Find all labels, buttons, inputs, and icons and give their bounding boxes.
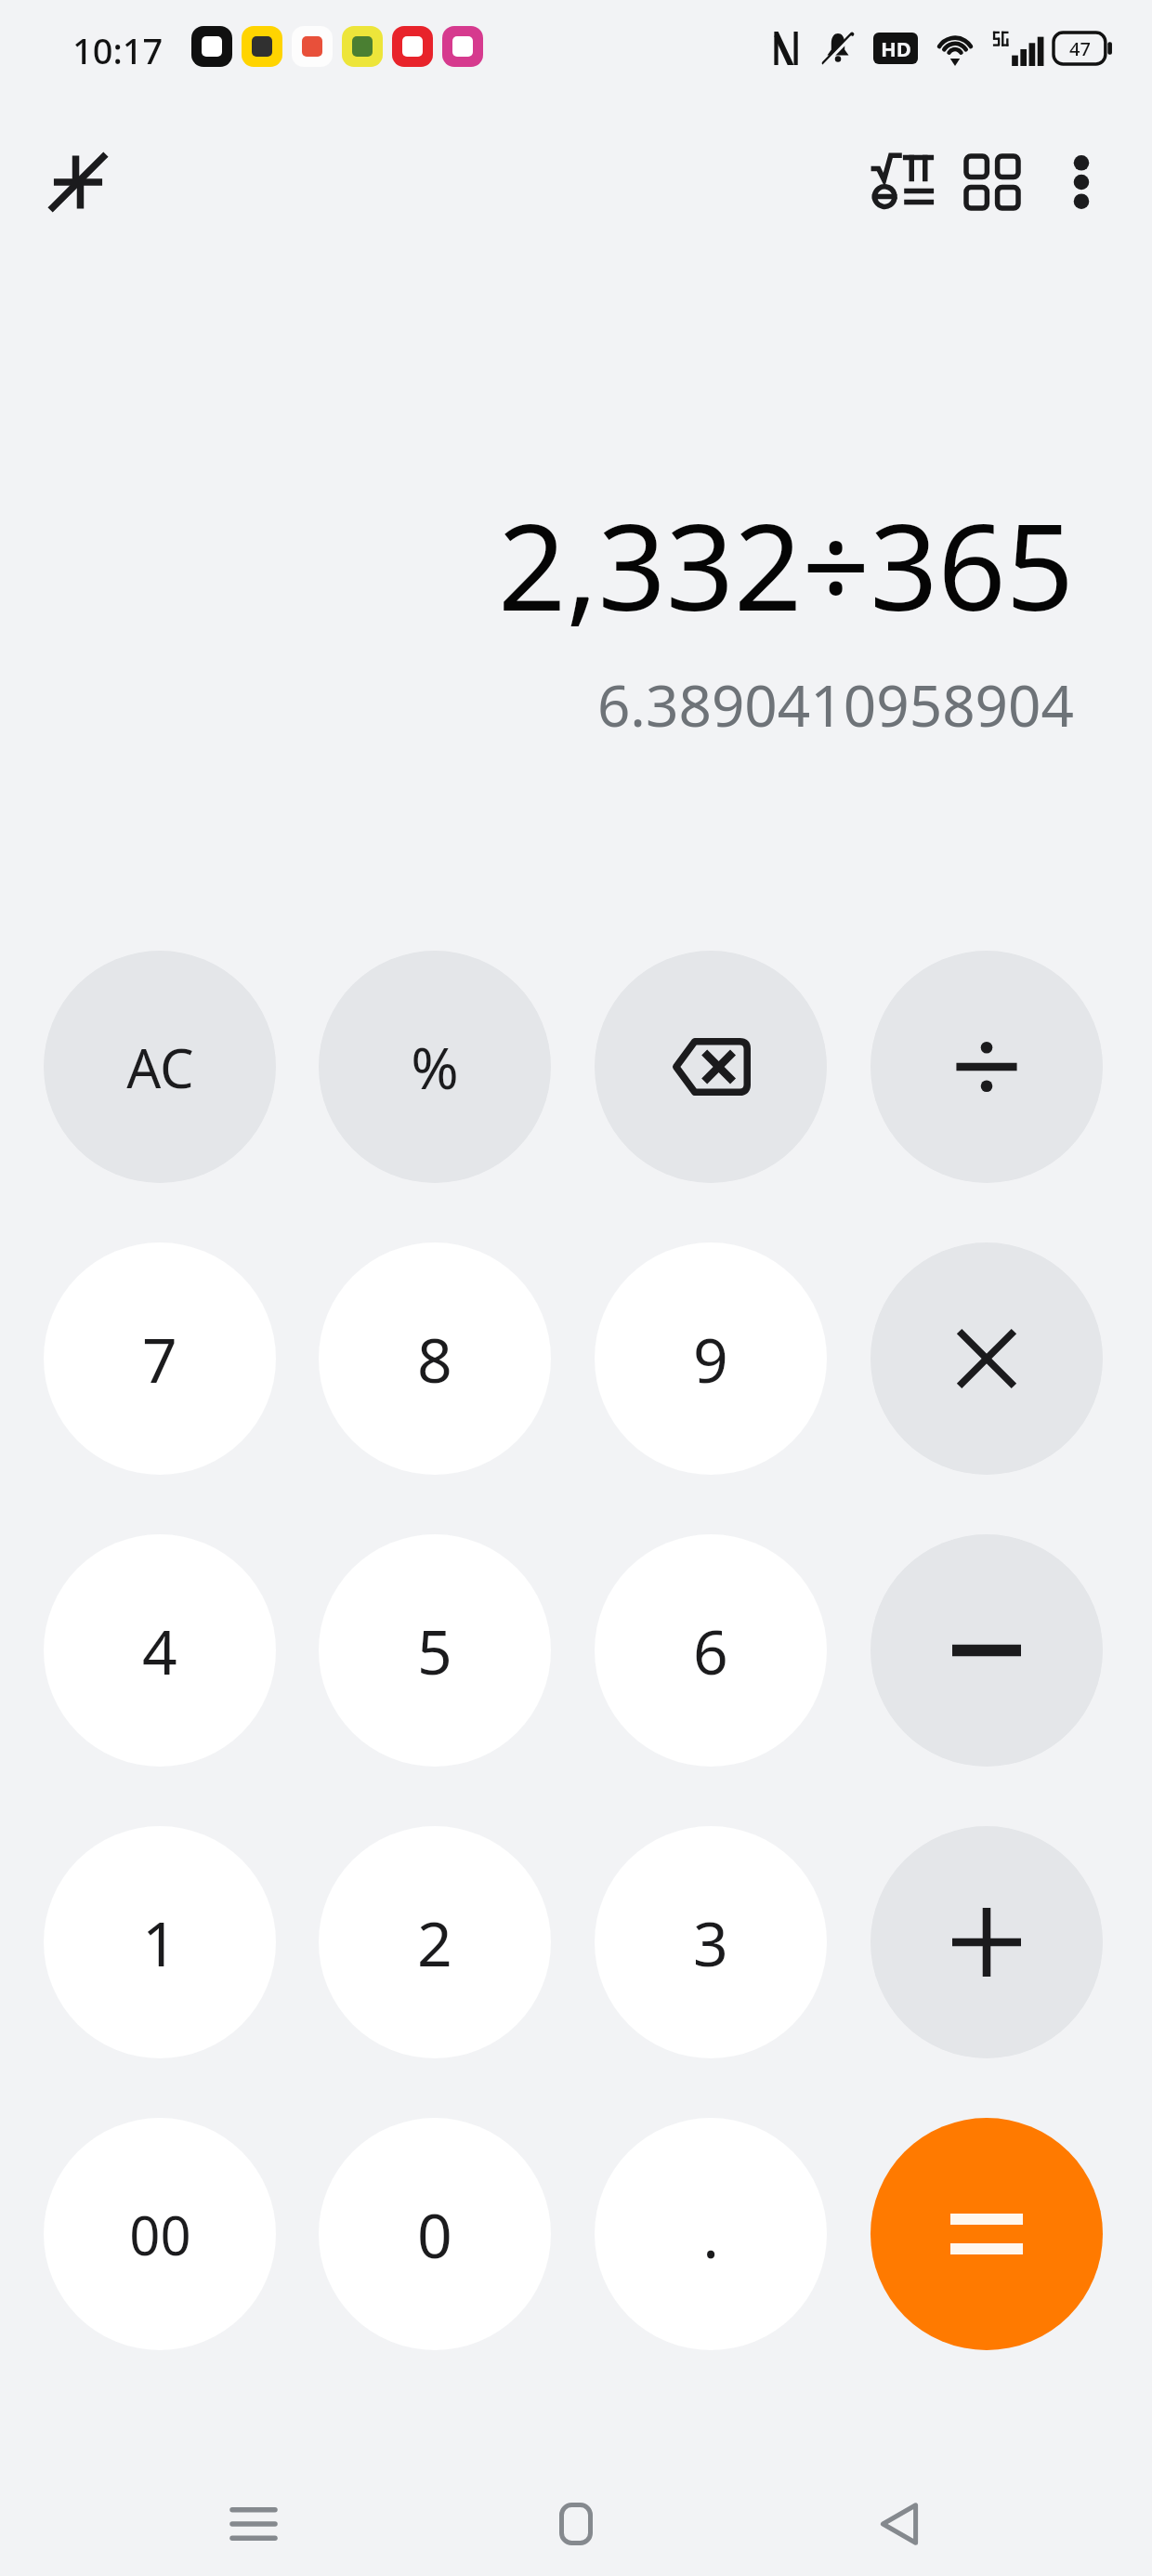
button[interactable]: 7 xyxy=(44,1242,276,1475)
staticText: 6 xyxy=(693,1609,728,1692)
button[interactable]: 5 xyxy=(319,1534,551,1767)
staticText: 4 xyxy=(142,1609,177,1692)
staticText: 5 xyxy=(417,1609,452,1692)
button[interactable]: Multiply xyxy=(871,1242,1103,1475)
button[interactable]: Back xyxy=(830,2472,969,2576)
staticText: 3 xyxy=(693,1900,728,1984)
button[interactable]: 4 xyxy=(44,1534,276,1767)
button[interactable]: Scientific mode xyxy=(858,138,948,227)
button[interactable]: Home xyxy=(506,2472,646,2576)
staticText: HD xyxy=(881,34,911,62)
button[interactable]: Add xyxy=(871,1826,1103,2058)
staticText: 10:17 xyxy=(72,26,164,74)
button[interactable]: 9 xyxy=(595,1242,827,1475)
staticText: 0 xyxy=(417,2192,452,2276)
button[interactable]: 0 xyxy=(319,2118,551,2350)
staticText: . xyxy=(702,2192,719,2276)
staticText: 1 xyxy=(142,1900,177,1984)
button[interactable]: Equals xyxy=(871,2118,1103,2350)
staticText: % xyxy=(411,1028,459,1106)
button[interactable]: . xyxy=(595,2118,827,2350)
staticText: 7 xyxy=(142,1317,177,1400)
button[interactable]: 2 xyxy=(319,1826,551,2058)
staticText: 9 xyxy=(693,1317,728,1400)
button[interactable]: Backspace xyxy=(595,951,827,1183)
button[interactable]: Subtract xyxy=(871,1534,1103,1767)
staticText: 6.3890410958904 xyxy=(596,665,1074,743)
button[interactable]: AC xyxy=(44,951,276,1183)
staticText: 00 xyxy=(129,2198,191,2271)
button[interactable]: Collapse xyxy=(33,138,123,227)
staticText: 2 xyxy=(417,1900,452,1984)
button[interactable]: Converters xyxy=(948,138,1037,227)
button[interactable]: Divide xyxy=(871,951,1103,1183)
button[interactable]: 1 xyxy=(44,1826,276,2058)
button[interactable]: 8 xyxy=(319,1242,551,1475)
staticText: 2,332÷365 xyxy=(497,483,1074,645)
button[interactable]: More options xyxy=(1037,138,1126,227)
button[interactable]: % xyxy=(319,951,551,1183)
staticText: AC xyxy=(126,1031,194,1104)
button[interactable]: 3 xyxy=(595,1826,827,2058)
button[interactable]: 6 xyxy=(595,1534,827,1767)
button[interactable]: 00 xyxy=(44,2118,276,2350)
staticText: 47 xyxy=(1069,36,1091,61)
staticText: 8 xyxy=(417,1317,452,1400)
button[interactable]: Recent apps xyxy=(184,2472,323,2576)
